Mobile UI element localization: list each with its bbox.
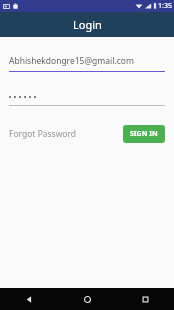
button[interactable]: Back xyxy=(0,288,58,310)
button[interactable]: Abhishekdongre15@gmail.com xyxy=(9,55,165,72)
staticText: 1:35 xyxy=(158,1,172,11)
staticText: Forgot Password xyxy=(9,128,77,140)
button[interactable]: SIGN IN xyxy=(123,125,165,143)
button[interactable] xyxy=(9,92,165,106)
button[interactable]: Home xyxy=(58,288,116,310)
button[interactable]: Forgot Password xyxy=(9,128,77,140)
staticText: Abhishekdongre15@gmail.com xyxy=(9,55,134,67)
staticText: SIGN IN xyxy=(130,129,158,139)
button[interactable]: Recent apps xyxy=(116,288,174,310)
staticText: Login xyxy=(73,17,102,32)
